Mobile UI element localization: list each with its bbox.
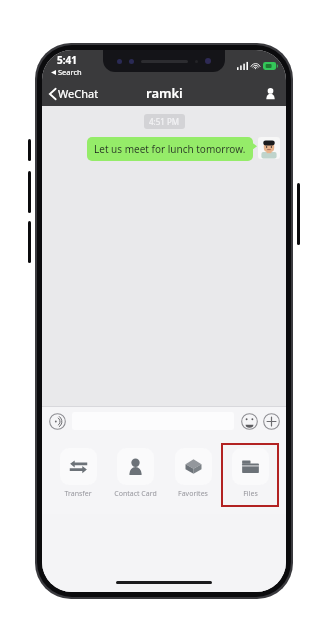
button[interactable]: Emoji [240,412,258,430]
button[interactable]: Let us meet for lunch tomorrow. [87,137,253,161]
button[interactable]: Contact profile [255,82,286,105]
button[interactable]: Transfer [50,444,106,506]
button[interactable]: More actions [262,412,280,430]
staticText: 5:41 [57,53,77,67]
staticText: 4:51 PM [149,116,180,127]
button[interactable]: Voice message [48,412,66,430]
button[interactable]: Avatar [258,137,280,159]
button[interactable]: Contact Card [107,444,163,506]
button[interactable]: WeChat [42,82,105,105]
staticText: Files [243,489,258,499]
button[interactable]: Files [222,444,278,506]
staticText: Let us meet for lunch tomorrow. [94,142,246,156]
staticText: Search [58,67,82,77]
staticText: WeChat [58,86,99,101]
staticText: ramki [146,84,183,102]
button[interactable]: Favorites [165,444,221,506]
staticText: Favorites [178,489,208,499]
staticText: Contact Card [114,489,157,499]
staticText: Transfer [64,489,92,499]
